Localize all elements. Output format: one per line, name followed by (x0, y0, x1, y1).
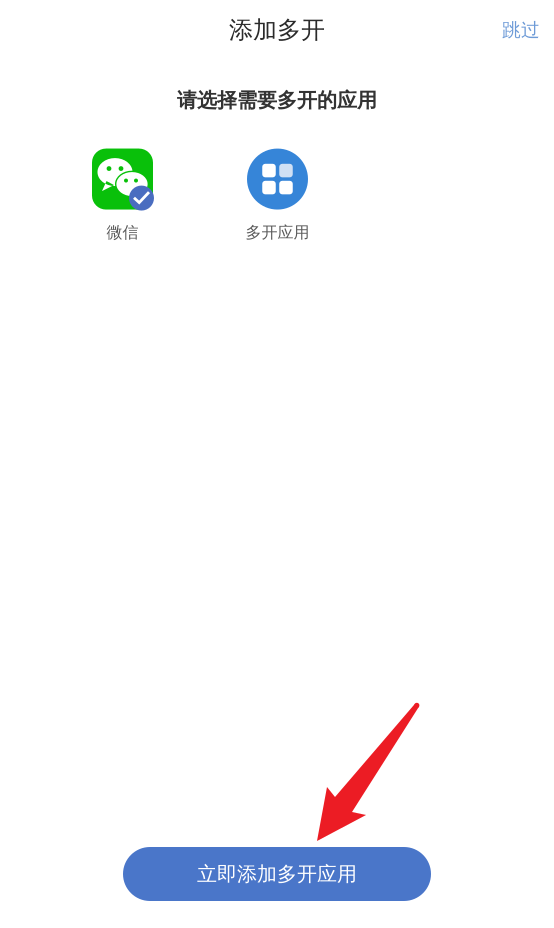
button[interactable]: 多开应用 (200, 149, 355, 242)
button[interactable]: 跳过 (502, 18, 540, 41)
staticText: 添加多开 (229, 15, 325, 45)
button[interactable]: 微信 (45, 149, 200, 242)
staticText: 微信 (106, 223, 138, 242)
button[interactable]: 立即添加多开应用 (123, 847, 431, 901)
staticText: 跳过 (502, 18, 540, 41)
staticText: 多开应用 (245, 223, 309, 242)
staticText: 请选择需要多开的应用 (177, 88, 377, 113)
staticText: 立即添加多开应用 (197, 862, 357, 886)
